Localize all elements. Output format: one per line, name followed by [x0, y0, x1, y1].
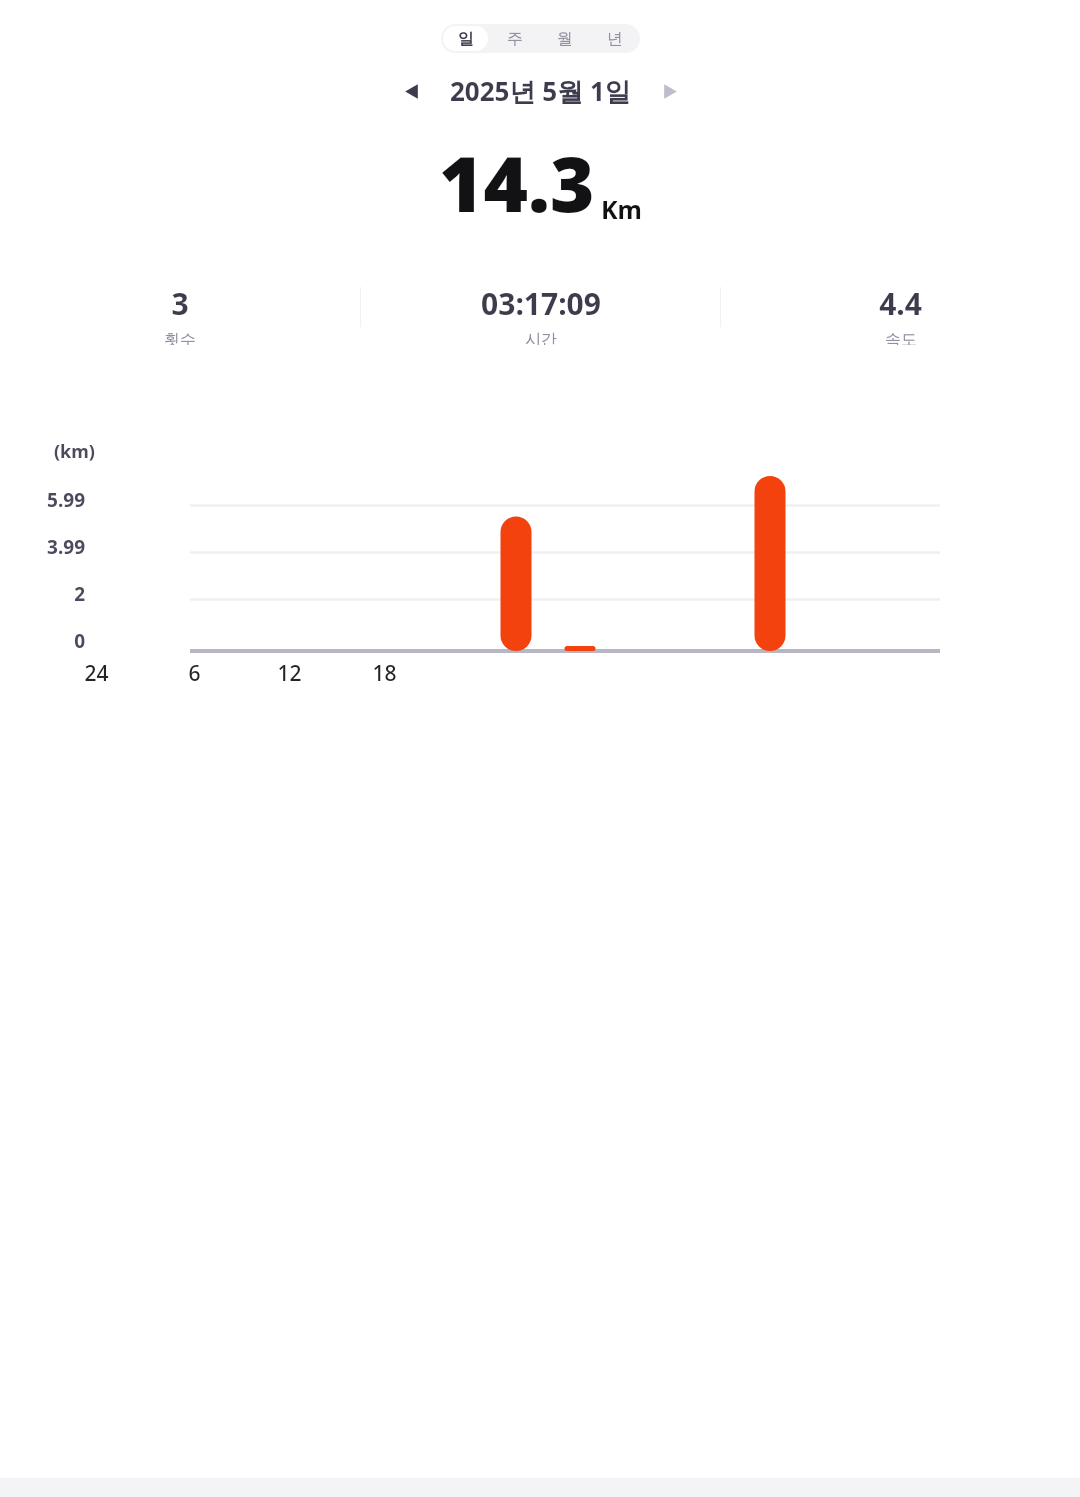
staticText: 24 [84, 659, 109, 688]
staticText: 03:17:09 [481, 283, 601, 324]
button[interactable]: 주 [492, 26, 538, 51]
staticText: 14.3 [439, 131, 595, 235]
staticText: 3 [171, 283, 189, 324]
staticText: 월 [557, 29, 573, 49]
button[interactable]: 월 [542, 26, 588, 51]
button[interactable]: Previous day [394, 74, 428, 108]
staticText: 12 [277, 659, 302, 688]
staticText: 일 [458, 29, 474, 49]
staticText: 18 [372, 659, 397, 688]
button[interactable]: 일 [443, 26, 488, 51]
staticText: 4.4 [879, 283, 922, 324]
staticText: 속도 [885, 330, 917, 345]
staticText: 횟수 [164, 330, 196, 345]
staticText: 6 [188, 659, 201, 688]
button[interactable]: 4.4 [721, 283, 1080, 345]
staticText: 2 [74, 581, 85, 607]
staticText: (km) [54, 439, 95, 464]
button[interactable]: 년 [592, 26, 638, 51]
staticText: 3.99 [47, 534, 85, 560]
staticText: 0 [74, 628, 85, 654]
staticText: 5.99 [47, 487, 85, 513]
staticText: Km [601, 192, 642, 226]
button[interactable]: 03:17:09 [361, 283, 720, 345]
staticText: 주 [507, 29, 523, 49]
staticText: 2025년 5월 1일 [450, 73, 631, 109]
button[interactable]: Next day [653, 74, 687, 108]
staticText: 년 [607, 29, 623, 49]
staticText: 시간 [525, 330, 557, 345]
button[interactable]: 3 [0, 283, 360, 345]
